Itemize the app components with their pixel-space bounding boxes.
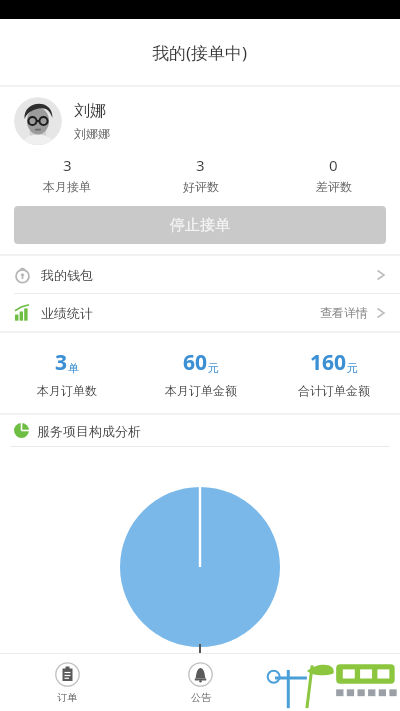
button[interactable]: 刘娜 [14, 97, 386, 145]
staticText: 3 [55, 348, 68, 377]
staticText: 订单 [57, 691, 77, 704]
button[interactable]: 3 [0, 155, 134, 194]
staticText: 本月订单数 [37, 383, 97, 398]
staticText: 公告 [191, 691, 211, 704]
staticText: 3 [63, 155, 72, 175]
button[interactable]: 订单 [0, 654, 134, 711]
other: 公告 [188, 662, 213, 687]
staticText: 差评数 [316, 179, 352, 194]
staticText: 停止接单 [170, 216, 230, 235]
staticText: 本月订单金额 [165, 383, 237, 398]
staticText: 单 [68, 361, 79, 375]
staticText: 合计订单金额 [298, 383, 370, 398]
other: 订单 [55, 662, 80, 687]
button[interactable]: 60 [134, 348, 267, 398]
button[interactable]: 3 [134, 155, 267, 194]
staticText: 刘娜娜 [74, 126, 110, 141]
staticText: 服务项目构成分析 [37, 423, 141, 439]
staticText: 160 [310, 348, 347, 377]
staticText: 0 [329, 155, 338, 175]
staticText: 查看详情 [320, 305, 368, 320]
button[interactable]: 我的钱包 [0, 256, 400, 293]
button[interactable]: 停止接单 [14, 206, 386, 244]
staticText: 我的钱包 [41, 267, 93, 283]
staticText: 业绩统计 [41, 305, 93, 321]
button[interactable]: 业绩统计 [0, 294, 400, 331]
staticText: 3 [196, 155, 205, 175]
staticText: 好评数 [183, 179, 219, 194]
staticText: 刘娜 [74, 101, 106, 121]
button[interactable]: 160 [267, 348, 400, 398]
staticText: 元 [347, 361, 358, 375]
staticText: 元 [208, 361, 219, 375]
button[interactable]: 公告 [134, 654, 267, 711]
staticText: 我的(接单中) [152, 41, 248, 64]
button[interactable]: 3 [0, 348, 134, 398]
staticText: 本月接单 [43, 179, 91, 194]
staticText: 60 [183, 348, 208, 377]
button[interactable]: 0 [267, 155, 400, 194]
